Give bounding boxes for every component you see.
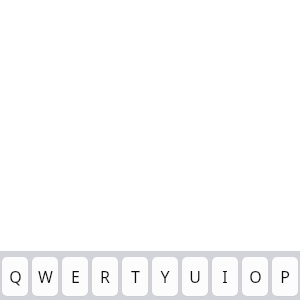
staticText: T bbox=[131, 266, 140, 288]
button[interactable]: I bbox=[212, 257, 238, 296]
staticText: I bbox=[222, 266, 228, 288]
button[interactable]: P bbox=[272, 257, 298, 296]
staticText: E bbox=[71, 266, 80, 288]
staticText: O bbox=[249, 266, 262, 288]
staticText: U bbox=[189, 266, 201, 288]
staticText: R bbox=[100, 266, 110, 288]
button[interactable]: Y bbox=[152, 257, 178, 296]
staticText: Q bbox=[9, 266, 22, 288]
button[interactable]: E bbox=[62, 257, 88, 296]
button[interactable]: Q bbox=[2, 257, 28, 296]
button[interactable]: T bbox=[122, 257, 148, 296]
button[interactable]: O bbox=[242, 257, 268, 296]
staticText: P bbox=[280, 266, 290, 288]
button[interactable]: R bbox=[92, 257, 118, 296]
button[interactable]: W bbox=[32, 257, 58, 296]
button[interactable]: U bbox=[182, 257, 208, 296]
staticText: W bbox=[38, 266, 53, 288]
staticText: Y bbox=[160, 266, 170, 288]
